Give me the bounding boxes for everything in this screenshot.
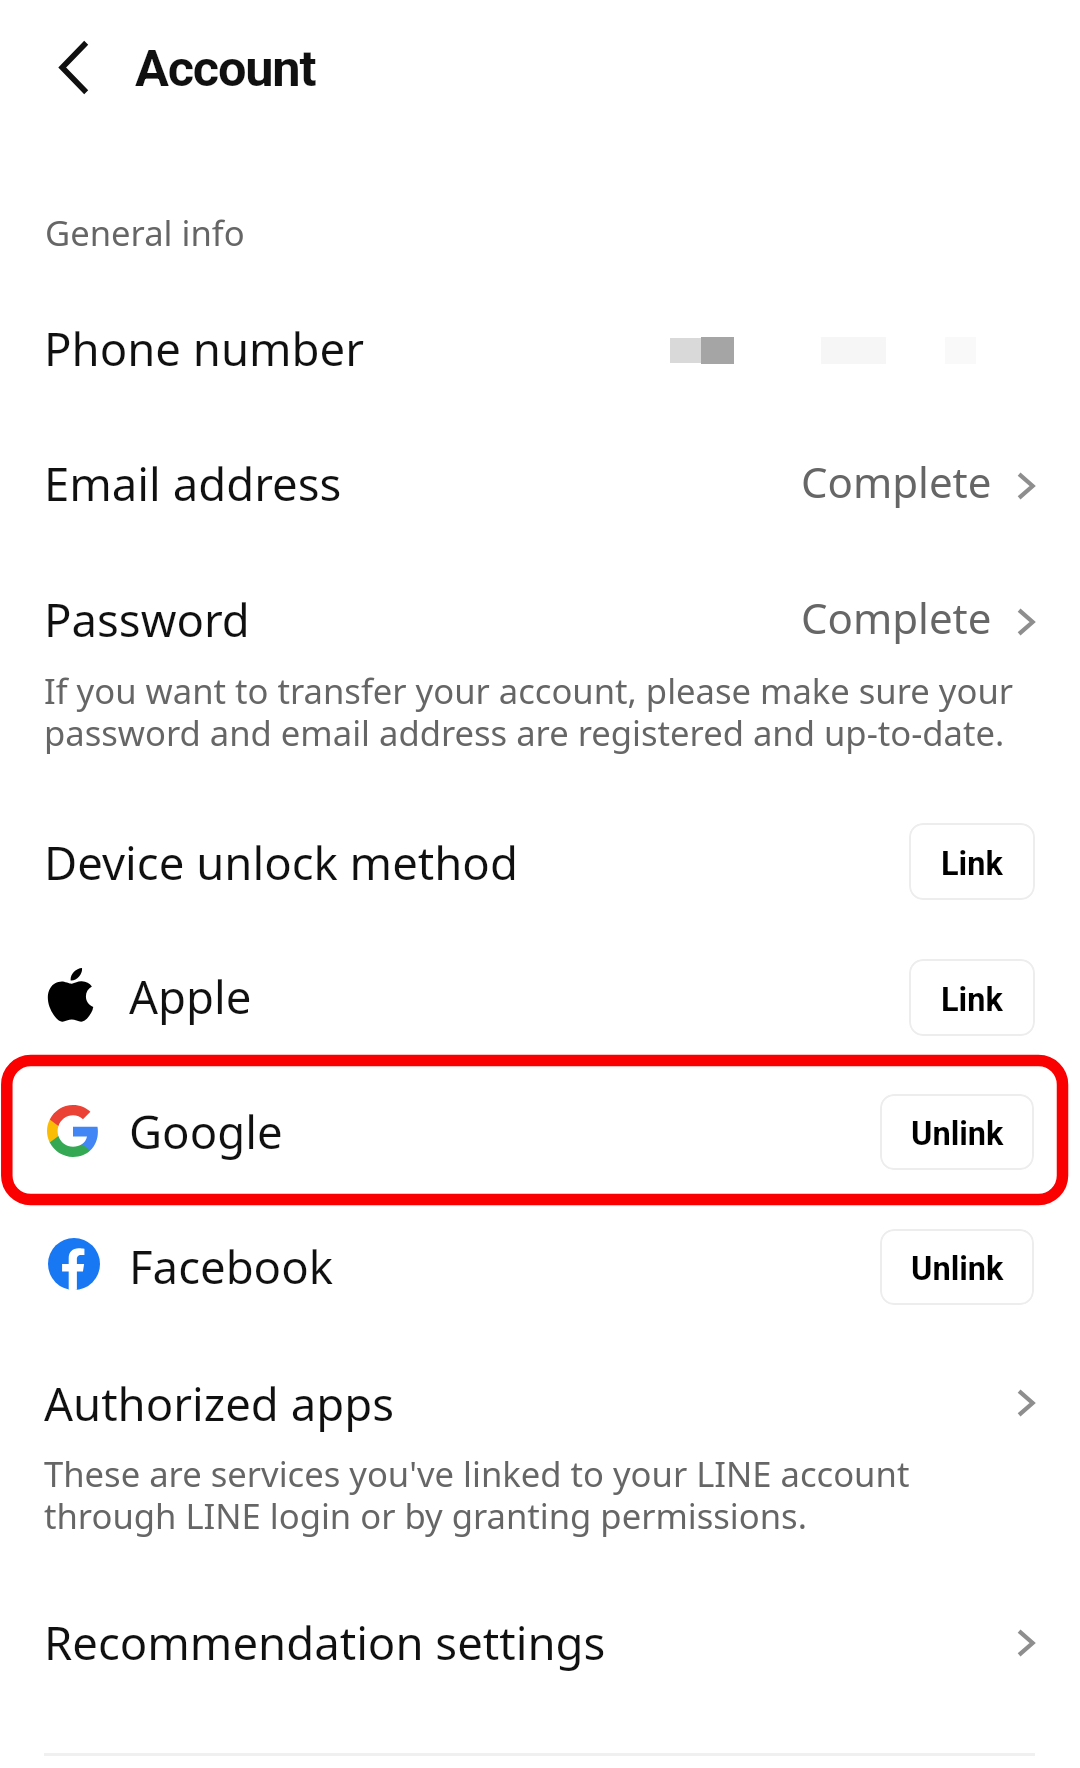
staticText: Unlink <box>911 1250 1004 1288</box>
button[interactable]: Apple <box>0 936 1080 1058</box>
button[interactable]: Phone number <box>0 290 1080 402</box>
staticText: Account <box>135 39 316 98</box>
staticText: Complete <box>801 589 992 646</box>
staticText: Recommendation settings <box>44 1611 606 1673</box>
staticText: Device unlock method <box>44 831 518 893</box>
staticText: Apple <box>129 965 252 1027</box>
button[interactable]: Recommendation settings <box>0 1584 1080 1694</box>
button[interactable]: Link <box>909 823 1035 900</box>
staticText: If you want to transfer your account, pl… <box>44 667 1044 756</box>
staticText: Link <box>941 845 1003 883</box>
staticText: Password <box>44 588 250 650</box>
staticText: Unlink <box>911 1115 1004 1153</box>
staticText: Complete <box>801 453 992 510</box>
button[interactable]: Google <box>0 1071 1080 1193</box>
button[interactable]: Unlink <box>880 1094 1034 1170</box>
button[interactable]: Email address <box>0 426 1080 538</box>
staticText: These are services you've linked to your… <box>44 1450 964 1539</box>
staticText: Link <box>941 981 1003 1019</box>
staticText: Email address <box>44 452 342 514</box>
button[interactable]: Authorized apps <box>0 1345 1080 1455</box>
button[interactable]: Back <box>30 18 116 116</box>
staticText: Facebook <box>129 1235 333 1297</box>
button[interactable]: Facebook <box>0 1206 1080 1328</box>
staticText: Phone number <box>44 317 365 379</box>
button[interactable]: Unlink <box>880 1229 1034 1305</box>
staticText: Google <box>129 1100 283 1162</box>
staticText: Authorized apps <box>44 1372 394 1434</box>
button[interactable]: Password <box>0 562 1080 674</box>
staticText: General info <box>45 209 245 256</box>
button[interactable]: Link <box>909 959 1035 1036</box>
button[interactable]: Device unlock method <box>0 800 1080 922</box>
